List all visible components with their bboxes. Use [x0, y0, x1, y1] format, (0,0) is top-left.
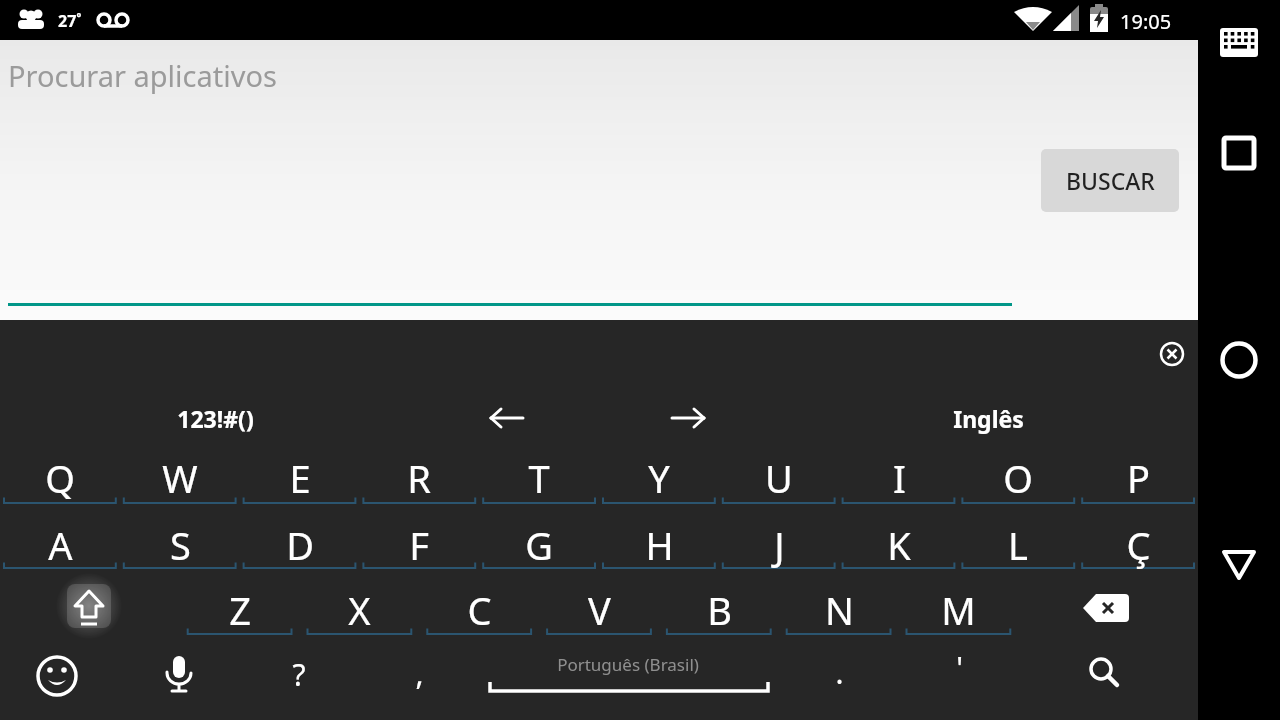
button[interactable]: W	[120, 445, 240, 511]
staticText: 123!#()	[177, 403, 254, 434]
button[interactable]: Procurar aplicativos	[8, 56, 277, 95]
staticText: Ç	[1126, 519, 1151, 571]
staticText: .	[835, 652, 844, 693]
button[interactable]: 123!#()	[155, 385, 275, 451]
staticText: R	[407, 452, 431, 504]
staticText: J	[774, 519, 785, 571]
button[interactable]: C	[419, 577, 539, 643]
button[interactable]: BUSCAR	[1041, 149, 1179, 212]
staticText: ,	[415, 653, 424, 694]
button[interactable]: N	[779, 577, 899, 643]
staticText: T	[528, 452, 550, 504]
button[interactable]: '	[899, 634, 1019, 700]
button[interactable]: Y	[599, 445, 719, 511]
staticText: L	[1008, 519, 1028, 571]
staticText: ?	[292, 654, 306, 695]
button[interactable]: K	[839, 512, 959, 578]
button[interactable]: ,	[359, 640, 479, 706]
button[interactable]: S	[120, 512, 240, 578]
staticText: I	[893, 452, 906, 504]
staticText: D	[286, 519, 314, 571]
staticText: M	[941, 584, 976, 636]
staticText: 27˚	[58, 10, 82, 32]
staticText: K	[887, 519, 911, 571]
staticText: Q	[45, 452, 75, 504]
staticText: B	[707, 584, 732, 636]
button[interactable]: O	[958, 445, 1078, 511]
button[interactable]: .	[779, 639, 899, 705]
button[interactable]: M	[898, 577, 1018, 643]
staticText: '	[956, 647, 963, 688]
staticText: S	[170, 519, 191, 571]
button[interactable]: Q	[0, 445, 120, 511]
staticText: A	[48, 519, 73, 571]
button[interactable]	[1208, 125, 1270, 180]
staticText: V	[588, 584, 611, 636]
button[interactable]	[1208, 15, 1270, 70]
button[interactable]: X	[299, 577, 419, 643]
staticText: BUSCAR	[1066, 165, 1155, 196]
button[interactable]: T	[479, 445, 599, 511]
staticText: Português (Brasil)	[548, 653, 708, 676]
button[interactable]: R	[359, 445, 479, 511]
button[interactable]	[1208, 332, 1270, 387]
button[interactable]: V	[539, 577, 659, 643]
button[interactable]: D	[240, 512, 360, 578]
staticText: F	[409, 519, 429, 571]
button[interactable]: F	[359, 512, 479, 578]
button[interactable]: I	[839, 445, 959, 511]
staticText: N	[825, 584, 854, 636]
button[interactable]: J	[719, 512, 839, 578]
button[interactable]: ?	[239, 641, 359, 707]
button[interactable]	[1208, 538, 1270, 593]
button[interactable]: U	[719, 445, 839, 511]
button[interactable]: Ç	[1078, 512, 1198, 578]
button[interactable]: H	[599, 512, 719, 578]
button[interactable]: Inglês	[928, 385, 1048, 451]
staticText: P	[1127, 452, 1150, 504]
staticText: W	[162, 452, 198, 504]
staticText: O	[1003, 452, 1033, 504]
staticText: H	[645, 519, 674, 571]
staticText: E	[289, 452, 311, 504]
staticText: Y	[648, 452, 670, 504]
button[interactable]: Z	[180, 577, 300, 643]
staticText: G	[525, 519, 553, 571]
button[interactable]: A	[0, 512, 120, 578]
staticText: C	[467, 584, 492, 636]
button[interactable]: P	[1078, 445, 1198, 511]
staticText: X	[348, 584, 371, 636]
staticText: Inglês	[953, 403, 1024, 434]
staticText: 19:05	[1120, 8, 1172, 35]
button[interactable]: E	[240, 445, 360, 511]
button[interactable]: L	[958, 512, 1078, 578]
staticText: Z	[229, 584, 251, 636]
button[interactable]: G	[479, 512, 599, 578]
button[interactable]: B	[659, 577, 779, 643]
staticText: U	[765, 452, 793, 504]
